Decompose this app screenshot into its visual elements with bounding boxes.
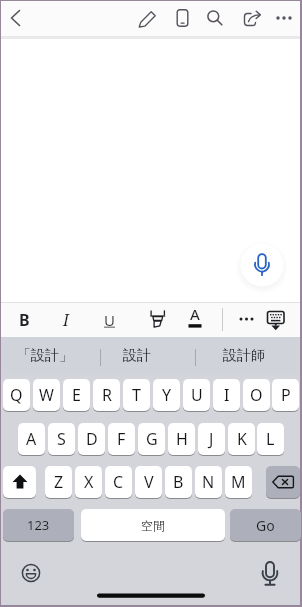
button[interactable]: [229, 305, 257, 333]
staticText: F: [117, 428, 126, 450]
button[interactable]: F: [108, 423, 135, 455]
button[interactable]: [17, 559, 45, 587]
button[interactable]: [263, 305, 291, 333]
staticText: G: [146, 428, 158, 450]
button[interactable]: 空間: [81, 509, 225, 541]
staticText: M: [231, 471, 246, 493]
button[interactable]: V: [135, 466, 162, 498]
button[interactable]: J: [198, 423, 225, 455]
staticText: O: [250, 384, 263, 406]
button[interactable]: [236, 4, 264, 32]
button[interactable]: Q: [3, 379, 30, 411]
button[interactable]: [266, 466, 300, 498]
button[interactable]: M: [225, 466, 252, 498]
staticText: J: [209, 428, 214, 450]
button[interactable]: C: [105, 466, 132, 498]
button[interactable]: P: [272, 379, 299, 411]
button[interactable]: H: [168, 423, 195, 455]
button[interactable]: [270, 4, 298, 32]
staticText: P: [281, 384, 291, 406]
staticText: Q: [10, 384, 23, 406]
button[interactable]: I: [53, 306, 79, 334]
button[interactable]: [199, 4, 227, 32]
staticText: Go: [256, 516, 275, 535]
staticText: 設計: [123, 347, 151, 365]
staticText: D: [86, 428, 98, 450]
staticText: E: [72, 384, 81, 406]
button[interactable]: [256, 559, 284, 587]
button[interactable]: 123: [3, 509, 74, 541]
staticText: L: [266, 428, 275, 450]
button[interactable]: G: [138, 423, 165, 455]
button[interactable]: [3, 466, 36, 498]
staticText: Z: [54, 471, 64, 493]
staticText: X: [84, 471, 94, 493]
button[interactable]: [168, 4, 196, 32]
staticText: S: [57, 428, 66, 450]
button[interactable]: U: [95, 306, 123, 334]
button[interactable]: A: [18, 423, 45, 455]
staticText: A: [190, 304, 200, 324]
button[interactable]: Z: [45, 466, 72, 498]
staticText: B: [173, 471, 184, 493]
button[interactable]: [141, 305, 169, 333]
button[interactable]: O: [243, 379, 270, 411]
staticText: W: [39, 384, 54, 406]
button[interactable]: [5, 4, 33, 32]
button[interactable]: E: [63, 379, 90, 411]
staticText: 123: [27, 516, 50, 534]
staticText: Y: [162, 384, 172, 406]
staticText: I: [63, 309, 69, 331]
button[interactable]: 設計師: [215, 346, 273, 366]
staticText: R: [102, 384, 112, 406]
button[interactable]: X: [75, 466, 102, 498]
button[interactable]: L: [257, 423, 284, 455]
button[interactable]: K: [228, 423, 255, 455]
staticText: A: [26, 428, 37, 450]
button[interactable]: B: [165, 466, 192, 498]
button[interactable]: N: [195, 466, 222, 498]
staticText: U: [104, 310, 115, 330]
button[interactable]: R: [93, 379, 120, 411]
button[interactable]: D: [78, 423, 105, 455]
button[interactable]: 「設計」: [15, 346, 75, 366]
staticText: K: [237, 428, 247, 450]
button[interactable]: Y: [153, 379, 180, 411]
staticText: V: [144, 471, 154, 493]
staticText: 「設計」: [17, 347, 73, 365]
staticText: T: [132, 384, 141, 406]
staticText: B: [19, 309, 30, 331]
button[interactable]: 設計: [116, 346, 158, 366]
button[interactable]: Go: [230, 509, 301, 541]
button[interactable]: [240, 243, 284, 287]
button[interactable]: I: [213, 379, 240, 411]
staticText: N: [202, 471, 215, 493]
button[interactable]: S: [48, 423, 75, 455]
button[interactable]: A: [181, 303, 209, 325]
button[interactable]: W: [33, 379, 60, 411]
button[interactable]: U: [183, 379, 210, 411]
staticText: 設計師: [223, 347, 265, 365]
staticText: 空間: [141, 518, 165, 533]
staticText: U: [191, 384, 203, 406]
staticText: H: [176, 428, 188, 450]
button[interactable]: B: [11, 306, 37, 334]
staticText: C: [113, 471, 124, 493]
button[interactable]: [133, 4, 161, 32]
button[interactable]: T: [123, 379, 150, 411]
staticText: I: [224, 384, 230, 406]
